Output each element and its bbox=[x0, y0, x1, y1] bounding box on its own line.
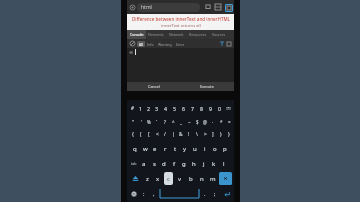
button[interactable]: \ bbox=[193, 128, 201, 141]
button[interactable]: f bbox=[169, 156, 179, 171]
button[interactable]: " bbox=[128, 115, 137, 128]
button[interactable]: ~ bbox=[185, 115, 193, 128]
button[interactable]: h bbox=[189, 156, 199, 171]
button[interactable]: n bbox=[196, 171, 207, 186]
button[interactable]: Execute bbox=[180, 82, 234, 91]
button[interactable]: 3 bbox=[152, 101, 161, 115]
button[interactable]: Filter bbox=[218, 40, 225, 47]
button[interactable]: u bbox=[190, 141, 200, 156]
button[interactable]: ; bbox=[210, 186, 220, 201]
button[interactable]: , bbox=[149, 186, 159, 201]
button[interactable]: c bbox=[164, 172, 173, 185]
staticText: p bbox=[223, 145, 227, 153]
button[interactable]: 0 bbox=[215, 101, 224, 115]
button[interactable]: Keyboard settings bbox=[128, 186, 139, 201]
button[interactable]: Tabs bbox=[213, 2, 223, 12]
button[interactable]: z bbox=[142, 171, 152, 186]
button[interactable]: ] bbox=[209, 128, 217, 141]
button[interactable]: Keyboard layout bbox=[224, 101, 233, 115]
button[interactable]: Resources bbox=[187, 30, 208, 39]
button[interactable]: ∞ bbox=[127, 48, 234, 82]
button[interactable]: Cancel bbox=[127, 82, 180, 91]
button[interactable]: l bbox=[219, 156, 229, 171]
button[interactable]: x bbox=[152, 171, 163, 186]
button[interactable]: m bbox=[207, 171, 218, 186]
button[interactable]: { bbox=[128, 128, 137, 141]
button[interactable]: ` bbox=[153, 115, 161, 128]
button[interactable]: y bbox=[180, 141, 190, 156]
button[interactable]: Site settings bbox=[127, 2, 137, 12]
button[interactable]: Warning bbox=[156, 41, 174, 47]
button[interactable]: 9 bbox=[206, 101, 215, 115]
staticText: > bbox=[204, 131, 207, 138]
button[interactable]: Error bbox=[174, 41, 187, 47]
button[interactable]: Sources bbox=[208, 30, 229, 39]
button[interactable]: Tab bbox=[128, 156, 139, 171]
button[interactable]: r bbox=[160, 141, 170, 156]
button[interactable]: _ bbox=[177, 115, 185, 128]
button[interactable]: 5 bbox=[170, 101, 179, 115]
button[interactable]: · bbox=[209, 115, 217, 128]
staticText: ~ bbox=[188, 119, 191, 125]
button[interactable]: Settings bbox=[225, 40, 232, 47]
button[interactable]: ( bbox=[137, 128, 145, 141]
button[interactable]: Cast bbox=[203, 2, 213, 12]
button[interactable]: 6 bbox=[179, 101, 188, 115]
button[interactable]: # bbox=[128, 101, 136, 115]
button[interactable]: i bbox=[200, 141, 210, 156]
staticText: 9 bbox=[209, 105, 212, 112]
button[interactable]: ! bbox=[185, 128, 193, 141]
button[interactable]: ? bbox=[161, 115, 169, 128]
button[interactable]: j bbox=[199, 156, 209, 171]
button[interactable]: s bbox=[149, 156, 159, 171]
button[interactable]: Backspace bbox=[219, 172, 232, 185]
button[interactable]: d bbox=[159, 156, 169, 171]
button[interactable]: p bbox=[220, 141, 230, 156]
button[interactable]: * bbox=[217, 115, 225, 128]
button[interactable]: v bbox=[174, 171, 185, 186]
button[interactable]: ^ bbox=[169, 115, 177, 128]
button[interactable]: t bbox=[170, 141, 180, 156]
button[interactable]: : bbox=[139, 186, 149, 201]
button[interactable]: / bbox=[161, 128, 169, 141]
button[interactable]: ' bbox=[137, 115, 145, 128]
button[interactable]: } bbox=[225, 128, 233, 141]
button[interactable]: > bbox=[201, 128, 209, 141]
button[interactable]: 7 bbox=[188, 101, 197, 115]
button[interactable]: w bbox=[140, 141, 150, 156]
button[interactable]: & bbox=[177, 128, 185, 141]
button[interactable]: Console bbox=[127, 30, 146, 39]
button[interactable]: $ bbox=[193, 115, 201, 128]
button[interactable]: . bbox=[200, 186, 210, 201]
button[interactable]: a bbox=[139, 156, 149, 171]
button[interactable]: | bbox=[169, 128, 177, 141]
button[interactable]: 4 bbox=[161, 101, 170, 115]
button[interactable]: < bbox=[153, 128, 161, 141]
button[interactable]: e bbox=[150, 141, 160, 156]
button[interactable]: 2 bbox=[144, 101, 152, 115]
button[interactable]: g bbox=[179, 156, 189, 171]
button[interactable]: Elements bbox=[146, 30, 166, 39]
button[interactable]: Shift bbox=[129, 172, 141, 185]
button[interactable]: Difference between innerText and innerHT… bbox=[127, 14, 234, 30]
button[interactable]: = bbox=[225, 115, 233, 128]
button[interactable]: b bbox=[185, 171, 196, 186]
button[interactable]: @ bbox=[201, 115, 209, 128]
button[interactable]: 1 bbox=[136, 101, 144, 115]
button[interactable]: o bbox=[210, 141, 220, 156]
staticText: n bbox=[200, 175, 204, 183]
button[interactable]: k bbox=[209, 156, 219, 171]
button[interactable]: Network bbox=[166, 30, 187, 39]
button[interactable]: Info bbox=[145, 41, 156, 47]
button[interactable]: html bbox=[137, 3, 200, 12]
button[interactable]: Clear console bbox=[129, 40, 136, 47]
button[interactable]: ) bbox=[217, 128, 225, 141]
button[interactable]: q bbox=[130, 141, 140, 156]
button[interactable]: More options bbox=[223, 2, 234, 13]
button[interactable]: All bbox=[137, 41, 145, 47]
button[interactable]: 8 bbox=[197, 101, 206, 115]
button[interactable]: Space bbox=[160, 189, 199, 198]
button[interactable]: % bbox=[145, 115, 153, 128]
button[interactable]: Enter bbox=[220, 186, 233, 201]
button[interactable]: [ bbox=[145, 128, 153, 141]
